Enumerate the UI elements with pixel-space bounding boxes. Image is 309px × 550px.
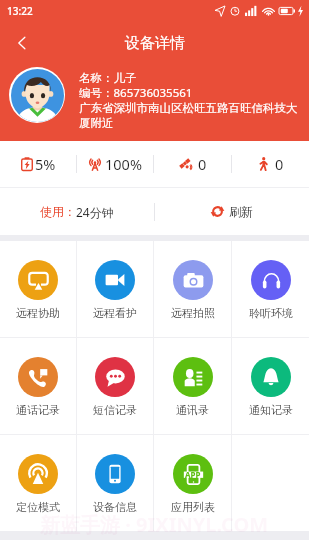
staticText: 短信记录 (93, 403, 137, 417)
staticText: 聆听环境 (249, 306, 293, 320)
staticText: 广东省深圳市南山区松旺五路百旺信科技大厦附近 (79, 101, 301, 130)
staticText: 通讯录 (176, 403, 209, 417)
staticText: 应用列表 (171, 500, 215, 514)
staticText: 通话记录 (16, 403, 60, 417)
button[interactable]: 远程拍照 (154, 241, 231, 337)
staticText: 定位模式 (16, 500, 60, 514)
staticText: 设备详情 (125, 34, 185, 53)
staticText: 通知记录 (249, 403, 293, 417)
button[interactable]: APP (154, 435, 231, 531)
button[interactable]: Back (6, 27, 38, 59)
staticText: 名称：儿子 (79, 71, 137, 85)
staticText: 设备信息 (93, 500, 137, 514)
button[interactable]: 5% (0, 141, 76, 187)
staticText: APP (185, 469, 201, 480)
staticText: 13:22 (7, 4, 33, 18)
staticText: 远程拍照 (171, 306, 215, 320)
button[interactable]: 远程看护 (77, 241, 153, 337)
button[interactable]: 0 (232, 141, 309, 187)
button[interactable]: 聆听环境 (232, 241, 309, 337)
button[interactable]: 远程协助 (0, 241, 76, 337)
button[interactable]: 刷新 (155, 188, 309, 235)
staticText: 编号：865736035561 (79, 85, 193, 101)
button[interactable]: 0 (154, 141, 231, 187)
button[interactable]: 通话记录 (0, 338, 76, 434)
staticText: 24分钟 (76, 204, 114, 220)
staticText: 新蓝手游 · 9IXINYL.COM (40, 511, 269, 538)
button[interactable]: 100% (77, 141, 153, 187)
button[interactable]: 定位模式 (0, 435, 76, 531)
staticText: 0 (198, 154, 207, 174)
staticText: 远程协助 (16, 306, 60, 320)
button[interactable]: 通讯录 (154, 338, 231, 434)
staticText: 100% (105, 154, 142, 174)
button[interactable]: 通知记录 (232, 338, 309, 434)
button[interactable]: 设备信息 (77, 435, 153, 531)
staticText: 刷新 (229, 204, 253, 219)
button[interactable]: 短信记录 (77, 338, 153, 434)
staticText: 远程看护 (93, 306, 137, 320)
staticText: 使用： (40, 204, 76, 219)
button[interactable]: 使用： (0, 188, 154, 235)
staticText: 5% (35, 154, 56, 174)
staticText: 0 (275, 154, 284, 174)
